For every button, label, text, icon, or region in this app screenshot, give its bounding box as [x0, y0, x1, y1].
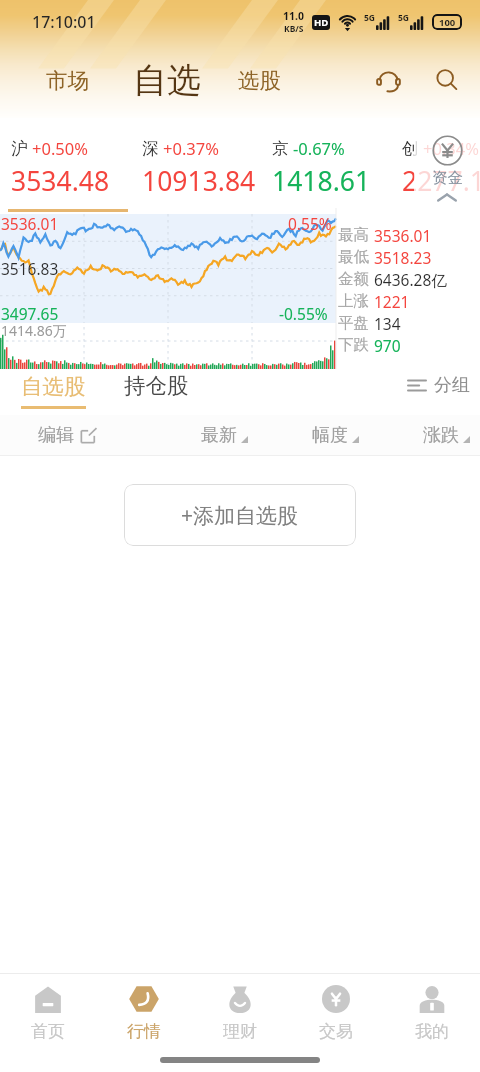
staticText: +0.50%: [32, 137, 88, 159]
button[interactable]: 资金: [414, 118, 480, 208]
staticText: 5G: [398, 12, 410, 24]
button[interactable]: 自选: [133, 59, 201, 102]
staticText: 资金: [432, 168, 463, 188]
staticText: HD: [314, 16, 329, 29]
staticText: 行情: [127, 1021, 161, 1041]
button[interactable]: 自选股: [21, 373, 86, 409]
staticText: KB/S: [284, 23, 304, 35]
staticText: 金额: [338, 269, 369, 289]
staticText: 1414.86万: [1, 321, 67, 340]
staticText: 平盘: [338, 313, 369, 333]
staticText: 沪: [11, 138, 28, 159]
staticText: 970: [374, 335, 401, 356]
staticText: 下跌: [338, 335, 369, 355]
staticText: 幅度: [312, 424, 348, 447]
staticText: 最低: [338, 247, 369, 267]
staticText: 17:10:01: [32, 11, 96, 33]
button[interactable]: 分组: [408, 380, 470, 403]
staticText: 3536.01: [1, 213, 59, 234]
staticText: 6436.28亿: [374, 269, 447, 290]
button[interactable]: 交易: [288, 974, 384, 1041]
staticText: 134: [374, 313, 401, 334]
button[interactable]: 幅度: [312, 424, 359, 447]
staticText: 1221: [374, 291, 410, 312]
staticText: -0.55%: [279, 303, 328, 324]
staticText: +添加自选股: [181, 501, 299, 530]
staticText: 分组: [434, 374, 470, 397]
staticText: 10913.84: [142, 163, 256, 199]
staticText: 11.0: [283, 9, 304, 23]
staticText: 京: [272, 138, 289, 159]
staticText: 100: [439, 16, 456, 29]
button[interactable]: 最新: [201, 424, 248, 447]
staticText: 涨跌: [423, 424, 459, 447]
button[interactable]: 市场: [46, 67, 89, 94]
staticText: 创: [402, 138, 419, 159]
button[interactable]: 我的: [384, 974, 480, 1041]
button[interactable]: 行情: [96, 974, 192, 1041]
staticText: 我的: [415, 1021, 449, 1041]
button[interactable]: 首页: [0, 974, 96, 1041]
staticText: 3516.83: [1, 258, 59, 279]
button[interactable]: +添加自选股: [124, 484, 356, 546]
staticText: 3536.01: [374, 225, 432, 246]
staticText: 理财: [223, 1021, 257, 1041]
staticText: +0.34%: [423, 137, 479, 159]
button[interactable]: 涨跌: [423, 424, 470, 447]
staticText: 上涨: [338, 291, 369, 311]
staticText: 深: [142, 138, 159, 159]
staticText: 3497.65: [1, 303, 59, 324]
staticText: 最高: [338, 225, 369, 245]
staticText: 3534.48: [11, 163, 110, 199]
staticText: +0.37%: [163, 137, 219, 159]
staticText: 2277.17: [402, 163, 480, 199]
staticText: 0.55%: [288, 213, 332, 234]
staticText: 3518.23: [374, 247, 432, 268]
button[interactable]: 持仓股: [124, 372, 189, 399]
staticText: 最新: [201, 424, 237, 447]
button[interactable]: 编辑: [38, 424, 97, 447]
staticText: 自选股: [21, 373, 86, 400]
button[interactable]: Search: [426, 59, 468, 101]
staticText: 5G: [364, 12, 376, 24]
staticText: 1418.61: [272, 163, 371, 199]
button[interactable]: Customer service: [367, 59, 409, 101]
staticText: 编辑: [38, 424, 74, 447]
staticText: 首页: [31, 1021, 65, 1041]
staticText: -0.67%: [293, 137, 345, 159]
staticText: 交易: [319, 1021, 353, 1041]
button[interactable]: 选股: [238, 67, 281, 94]
button[interactable]: 理财: [192, 974, 288, 1041]
